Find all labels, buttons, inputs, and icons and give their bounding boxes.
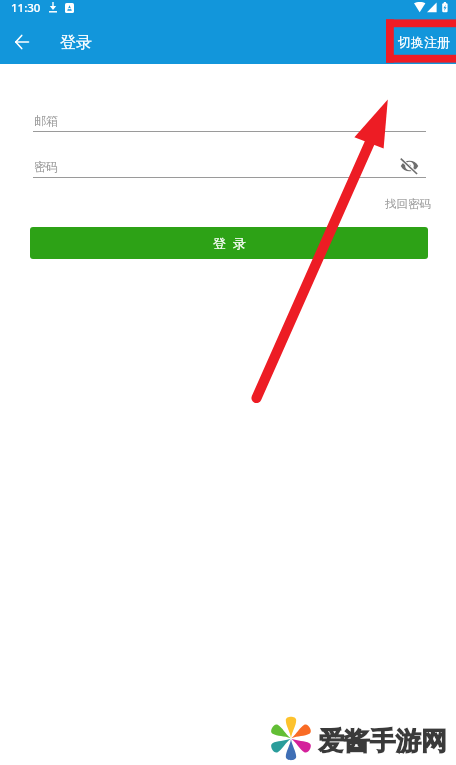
button[interactable]: 邮箱 xyxy=(33,107,426,132)
staticText: 密码 xyxy=(34,159,58,174)
staticText: 邮箱 xyxy=(34,113,58,128)
button[interactable]: 找回密码 xyxy=(378,189,434,215)
staticText: 爱酱手游网 xyxy=(318,725,447,758)
staticText: 登 录 xyxy=(213,234,246,252)
staticText: 找回密码 xyxy=(385,197,431,211)
staticText: 11:30 xyxy=(11,0,41,16)
button[interactable]: 切换注册 xyxy=(390,24,456,58)
button[interactable]: 密码 xyxy=(33,153,426,178)
button[interactable]: Toggle password visibility xyxy=(396,153,422,179)
staticText: 切换注册 xyxy=(398,34,450,50)
button[interactable]: Back xyxy=(6,26,38,58)
staticText: 登录 xyxy=(60,33,92,53)
button[interactable]: 登 录 xyxy=(30,227,428,259)
